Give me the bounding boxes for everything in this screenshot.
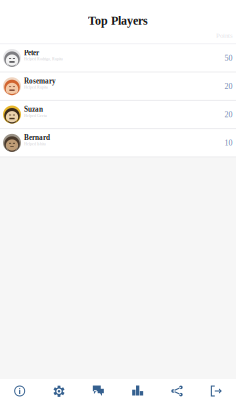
- staticText: 10: [224, 138, 232, 147]
- staticText: Helped Ishita: [24, 142, 46, 146]
- staticText: 20: [224, 110, 232, 119]
- button[interactable]: Bernard: [0, 129, 236, 157]
- staticText: Peter: [24, 49, 39, 57]
- button[interactable]: Log out: [197, 379, 236, 420]
- button[interactable]: Peter: [0, 44, 236, 73]
- staticText: Helped Geeta: [24, 113, 47, 118]
- button[interactable]: Rosemary: [0, 73, 236, 101]
- button[interactable]: Share: [157, 379, 197, 420]
- button[interactable]: Info: [0, 379, 39, 420]
- staticText: Points: [216, 31, 233, 39]
- staticText: Helped Rodrigo, Rupita: [24, 57, 63, 61]
- button[interactable]: Settings: [39, 379, 79, 420]
- staticText: Helped Rupita: [24, 85, 48, 89]
- staticText: Bernard: [24, 134, 50, 142]
- staticText: 50: [224, 53, 232, 62]
- staticText: Top Players: [88, 14, 148, 27]
- staticText: Suzan: [24, 105, 43, 113]
- button[interactable]: Suzan: [0, 101, 236, 129]
- button[interactable]: Messages: [79, 379, 118, 420]
- button[interactable]: Statistics: [118, 379, 157, 420]
- staticText: Rosemary: [24, 77, 56, 85]
- staticText: 20: [224, 82, 232, 91]
